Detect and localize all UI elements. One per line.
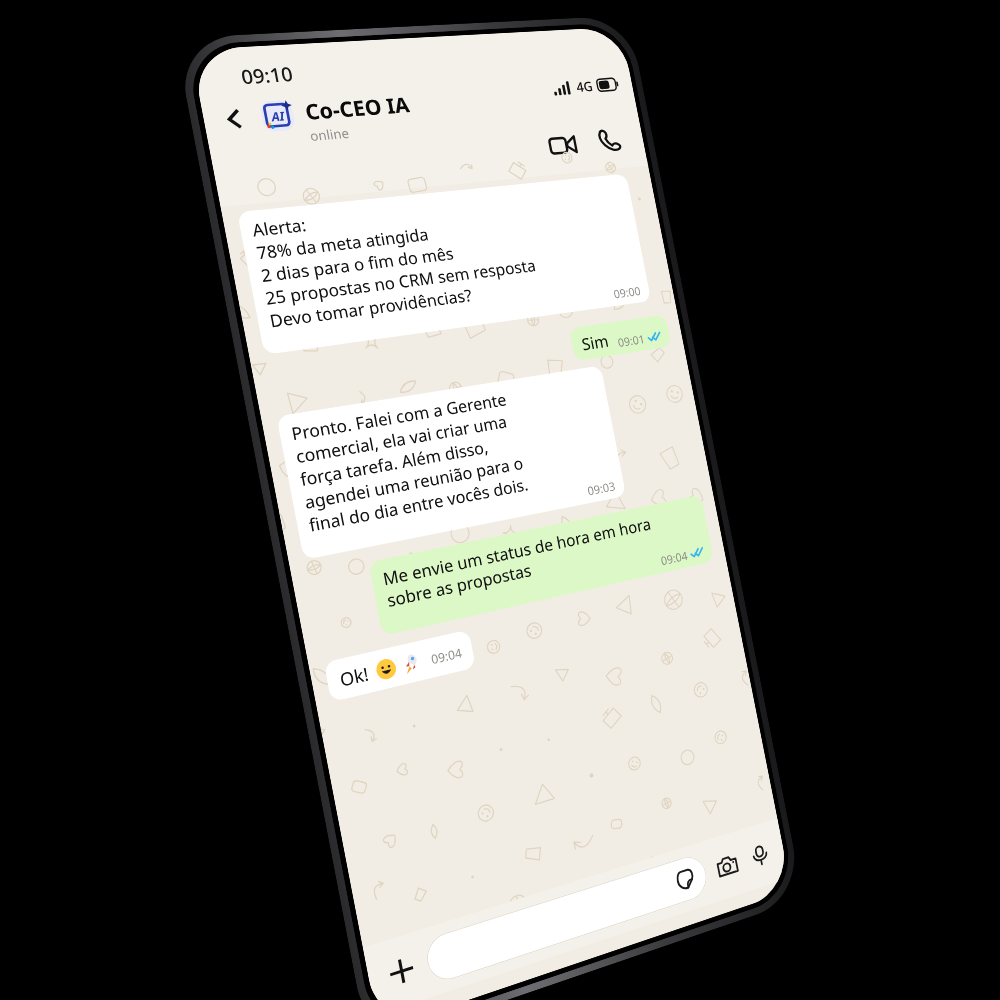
button[interactable]: Attach <box>381 948 423 995</box>
staticText: força tarefa. Além disso, <box>298 435 490 490</box>
staticText: 09:03 <box>586 478 617 498</box>
staticText: 09:00 <box>612 283 642 301</box>
staticText: AI <box>270 107 287 124</box>
staticText: 09:01 <box>616 331 646 350</box>
staticText: 4G <box>575 77 595 96</box>
button[interactable]: Voice message <box>746 838 774 872</box>
button[interactable] <box>423 852 710 986</box>
button[interactable]: Video call <box>541 125 584 166</box>
button[interactable]: Me envie um status de hora em hora sobre… <box>368 495 714 636</box>
staticText: 2 dias para o fim do mês <box>259 242 455 286</box>
staticText: Co-CEO IA <box>303 90 412 127</box>
button[interactable]: AI <box>256 80 560 149</box>
staticText: online <box>308 124 350 145</box>
staticText: final do dia entre vocês dois. <box>307 472 530 536</box>
button[interactable]: Sim <box>569 314 672 361</box>
staticText: 25 propostas no CRM sem resposta <box>263 254 538 309</box>
button[interactable]: Ok! <box>324 629 476 702</box>
button[interactable]: Alerta: <box>237 173 651 355</box>
staticText: 78% da meta atingida <box>254 222 431 263</box>
staticText: Sim <box>580 329 611 355</box>
button[interactable]: Voice call <box>589 121 631 161</box>
staticText: 09:04 <box>659 547 689 568</box>
button[interactable]: Back <box>214 100 257 138</box>
staticText: Pronto. Falei com a Gerente <box>289 388 508 444</box>
staticText: agendei uma reunião para o <box>302 451 525 513</box>
staticText: Me envie um status de hora em hora sobre… <box>381 512 657 612</box>
staticText: 09:10 <box>239 61 295 90</box>
staticText: comercial, ela vai criar uma <box>294 409 509 467</box>
staticText: Ok! <box>338 661 370 692</box>
button[interactable]: Pronto. Falei com a Gerente <box>276 365 626 560</box>
staticText: Alerta: <box>250 213 308 241</box>
button[interactable]: Camera <box>712 848 743 884</box>
staticText: Devo tomar providências? <box>268 283 474 332</box>
staticText: 09:04 <box>430 644 463 667</box>
